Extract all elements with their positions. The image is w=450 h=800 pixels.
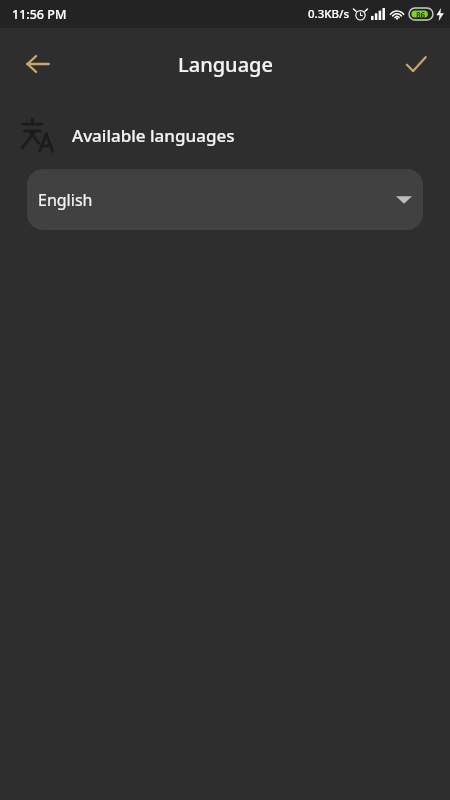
staticText: Available languages — [72, 124, 235, 147]
staticText: Language — [178, 51, 273, 78]
staticText: 0.3KB/s — [308, 6, 350, 22]
staticText: English — [38, 189, 93, 211]
button[interactable]: English — [27, 169, 423, 230]
staticText: 11:56 PM — [12, 6, 67, 23]
button[interactable]: Confirm — [392, 40, 440, 88]
staticText: 86 — [416, 9, 426, 20]
button[interactable]: Back — [14, 40, 62, 88]
